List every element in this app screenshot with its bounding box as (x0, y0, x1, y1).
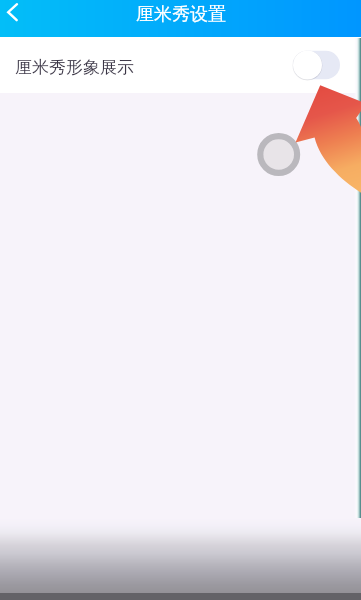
staticText: 厘米秀设置 (136, 3, 226, 26)
button[interactable]: Back (0, 0, 26, 25)
button[interactable]: 厘米秀形象展示 switch, off (293, 50, 340, 80)
button[interactable]: 厘米秀形象展示 (0, 37, 361, 93)
staticText: 厘米秀形象展示 (15, 57, 134, 78)
